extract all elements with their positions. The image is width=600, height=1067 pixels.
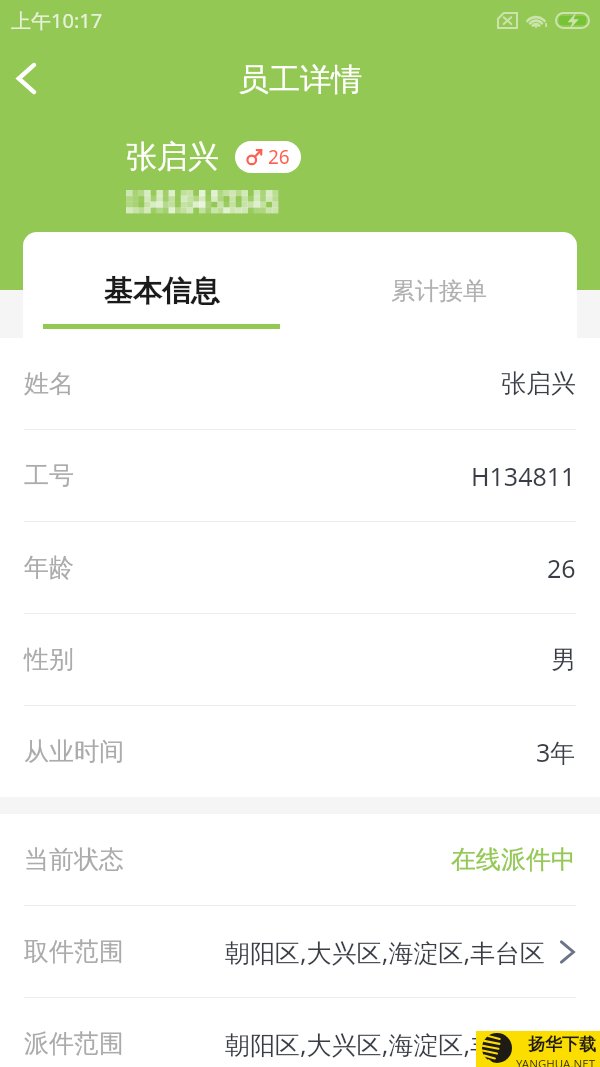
staticText: 基本信息 [104,273,220,310]
button[interactable]: 基本信息 [23,232,300,352]
staticText: 从业时间 [24,736,124,767]
staticText: 26 [268,144,290,170]
staticText: 当前状态 [24,844,124,875]
button[interactable]: 姓名 [0,338,600,430]
staticText: 性别 [24,644,74,675]
button[interactable]: 当前状态 [0,814,600,906]
button[interactable]: Back [2,54,50,102]
staticText: 扬华下载 [528,1034,596,1055]
staticText: 26 [547,551,576,585]
staticText: 工号 [24,460,74,491]
staticText: 上午10:17 [11,7,103,34]
staticText: 男 [551,644,576,675]
staticText: 3年 [536,735,576,769]
staticText: 朝阳区,大兴区,海淀区,丰台区 [225,1027,546,1061]
button[interactable]: 年龄 [0,522,600,614]
staticText: 朝阳区,大兴区,海淀区,丰台区 [225,935,546,969]
staticText: 累计接单 [391,276,487,306]
staticText: 张启兴 [126,137,219,176]
button[interactable]: 取件范围 [0,906,600,998]
button[interactable]: 从业时间 [0,706,600,797]
button[interactable]: 累计接单 [300,232,577,352]
staticText: H134811 [471,459,576,493]
staticText: 员工详情 [238,60,362,99]
staticText: YANGHUA.NET [516,1056,596,1067]
staticText: 取件范围 [24,936,124,967]
button[interactable]: 派件范围 [0,998,600,1067]
button[interactable]: 工号 [0,430,600,522]
staticText: 派件范围 [24,1028,124,1059]
staticText: 在线派件中 [451,844,576,875]
button[interactable]: 性别 [0,614,600,706]
staticText: 姓名 [24,368,74,399]
staticText: 张启兴 [501,368,576,399]
staticText: 年龄 [24,552,74,583]
